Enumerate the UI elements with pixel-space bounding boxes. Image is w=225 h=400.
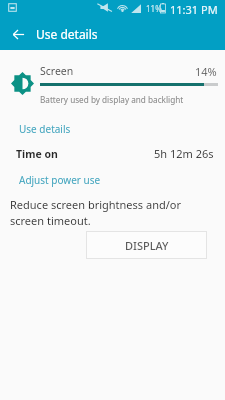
staticText: DISPLAY: [125, 238, 169, 253]
button[interactable]: DISPLAY: [86, 231, 207, 259]
button[interactable]: Navigate up: [5, 21, 31, 47]
staticText: 5h 12m 26s: [154, 146, 214, 161]
staticText: Adjust power use: [19, 173, 101, 187]
staticText: Use details: [36, 26, 98, 42]
staticText: 11%: [146, 3, 162, 14]
staticText: 14%: [195, 64, 217, 79]
staticText: Battery used by display and backlight: [40, 94, 184, 105]
button[interactable]: Adjust power use: [0, 170, 225, 190]
staticText: 11:31 PM: [170, 2, 218, 17]
staticText: Use details: [19, 122, 71, 136]
staticText: Screen: [40, 64, 74, 78]
button[interactable]: Use details: [0, 119, 225, 139]
staticText: Time on: [16, 147, 58, 161]
staticText: Reduce screen brightness and/or screen t…: [10, 197, 181, 228]
